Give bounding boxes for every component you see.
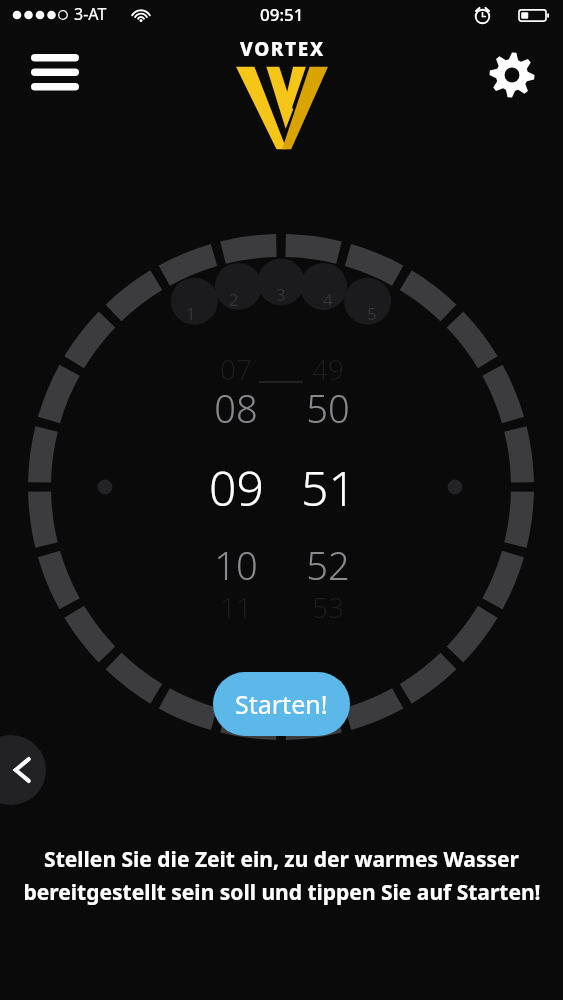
staticText: Stellen Sie die Zeit ein, zu der warmes … <box>44 845 519 874</box>
button[interactable]: 51 <box>287 453 369 521</box>
staticText: 09:51 <box>260 3 304 26</box>
staticText: 07 <box>220 350 252 388</box>
staticText: 11 <box>220 588 252 626</box>
button[interactable]: 52 <box>287 531 369 599</box>
button[interactable]: 2 <box>214 285 254 313</box>
button[interactable]: 3 <box>261 280 301 308</box>
staticText: 09 <box>209 455 264 520</box>
button[interactable]: 08 <box>195 374 277 442</box>
staticText: 50 <box>306 382 350 434</box>
staticText: 4 <box>323 288 333 311</box>
button[interactable]: 1 <box>171 299 211 327</box>
staticText: 49 <box>312 350 344 388</box>
button[interactable]: 10 <box>195 531 277 599</box>
button[interactable]: Menu <box>24 48 86 96</box>
staticText: 10 <box>214 539 258 591</box>
staticText: VORTEX <box>240 36 325 62</box>
staticText: 51 <box>301 455 356 520</box>
button[interactable]: Back <box>0 735 46 805</box>
button[interactable]: 09 <box>195 453 277 521</box>
button[interactable]: 53 <box>287 573 369 641</box>
staticText: Starten! <box>235 687 328 721</box>
button[interactable]: 07 <box>195 335 277 403</box>
staticText: 3 <box>276 283 286 306</box>
button[interactable]: Settings <box>483 46 541 104</box>
staticText: 52 <box>306 539 350 591</box>
button[interactable]: 5 <box>352 299 392 327</box>
staticText: 08 <box>214 382 258 434</box>
staticText: 53 <box>312 588 344 626</box>
staticText: bereitgestellt sein soll und tippen Sie … <box>23 878 541 907</box>
staticText: 2 <box>229 288 239 311</box>
staticText: 5 <box>367 302 377 325</box>
button[interactable]: 50 <box>287 374 369 442</box>
button[interactable]: Starten! <box>213 672 350 736</box>
button[interactable]: 4 <box>308 285 348 313</box>
button[interactable]: 11 <box>195 573 277 641</box>
staticText: 1 <box>186 302 196 325</box>
staticText: 3-AT <box>74 3 107 25</box>
button[interactable]: 49 <box>287 335 369 403</box>
